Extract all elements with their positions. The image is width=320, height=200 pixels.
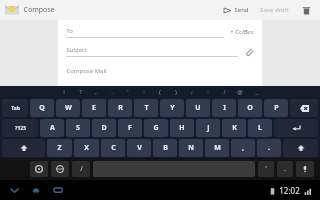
- button[interactable]: Compose Mail: [66, 67, 254, 75]
- button[interactable]: ?123: [2, 119, 38, 137]
- button[interactable]: Y: [160, 99, 184, 117]
- staticText: Y: [170, 103, 175, 113]
- staticText: !: [63, 88, 65, 96]
- staticText: Save draft: [260, 6, 289, 14]
- button[interactable]: .: [257, 139, 281, 157]
- staticText: M: [214, 143, 221, 153]
- button[interactable]: Discard: [299, 4, 314, 17]
- staticText: + Cc/Bcc: [230, 28, 254, 36]
- button[interactable]: Save draft: [257, 3, 292, 17]
- staticText: Tab: [11, 105, 20, 112]
- button[interactable]: B: [153, 139, 177, 157]
- button[interactable]: M: [205, 139, 229, 157]
- button[interactable]: N: [179, 139, 203, 157]
- staticText: E: [92, 103, 96, 113]
- button[interactable]: Enter: [274, 119, 318, 137]
- button[interactable]: Tab: [2, 99, 28, 117]
- staticText: ;: [191, 88, 193, 96]
- button[interactable]: H: [170, 119, 194, 137]
- staticText: O: [247, 103, 253, 113]
- staticText: To: [66, 27, 73, 35]
- staticText: ': [127, 88, 129, 96]
- button[interactable]: _: [248, 86, 264, 98]
- button[interactable]: ,: [88, 86, 104, 98]
- button[interactable]: Recent apps: [50, 182, 66, 198]
- button[interactable]: ,: [231, 139, 255, 157]
- button[interactable]: (: [152, 86, 168, 98]
- staticText: J: [207, 123, 210, 133]
- button[interactable]: Settings: [30, 161, 48, 177]
- button[interactable]: Voice input: [296, 161, 314, 177]
- button[interactable]: I: [212, 99, 236, 117]
- staticText: D: [101, 123, 107, 133]
- button[interactable]: V: [127, 139, 151, 157]
- button[interactable]: P: [264, 99, 288, 117]
- button[interactable]: Back: [6, 182, 22, 198]
- button[interactable]: X: [74, 139, 99, 157]
- staticText: X: [84, 143, 89, 153]
- button[interactable]: K: [222, 119, 246, 137]
- button[interactable]: -: [200, 86, 216, 98]
- button[interactable]: U: [186, 99, 210, 117]
- button[interactable]: @: [232, 86, 248, 98]
- staticText: Compose Mail: [66, 67, 107, 75]
- staticText: _: [255, 88, 258, 96]
- button[interactable]: Status: [268, 185, 314, 196]
- button[interactable]: T: [134, 99, 158, 117]
- staticText: ,: [95, 88, 97, 96]
- button[interactable]: Shift: [283, 139, 318, 157]
- staticText: L: [258, 123, 262, 133]
- staticText: B: [163, 143, 168, 153]
- staticText: G: [153, 123, 159, 133]
- button[interactable]: O: [238, 99, 262, 117]
- button[interactable]: .: [104, 86, 120, 98]
- button[interactable]: /: [216, 86, 232, 98]
- staticText: (: [159, 88, 161, 96]
- staticText: H: [179, 123, 185, 133]
- button[interactable]: R: [108, 99, 132, 117]
- button[interactable]: Subject: [66, 46, 254, 57]
- button[interactable]: Z: [47, 139, 72, 157]
- button[interactable]: W: [56, 99, 80, 117]
- button[interactable]: E: [82, 99, 106, 117]
- button[interactable]: J: [196, 119, 220, 137]
- staticText: T: [144, 103, 149, 113]
- staticText: @: [237, 88, 243, 96]
- staticText: /: [223, 88, 226, 96]
- button[interactable]: ?: [72, 86, 88, 98]
- button[interactable]: + Cc/Bcc: [230, 28, 254, 38]
- button[interactable]: Compose: [3, 1, 57, 19]
- button[interactable]: D: [92, 119, 116, 137]
- button[interactable]: ;: [184, 86, 200, 98]
- staticText: N: [188, 143, 194, 153]
- button[interactable]: Backspace: [290, 99, 318, 117]
- staticText: W: [65, 103, 72, 113]
- button[interactable]: Q: [30, 99, 54, 117]
- staticText: .: [111, 88, 113, 96]
- button[interactable]: A: [40, 119, 64, 137]
- button[interactable]: F: [118, 119, 142, 137]
- button[interactable]: :: [136, 86, 152, 98]
- button[interactable]: L: [248, 119, 272, 137]
- staticText: P: [274, 103, 279, 113]
- staticText: Q: [39, 103, 45, 113]
- button[interactable]: G: [144, 119, 168, 137]
- button[interactable]: Input language: [51, 161, 69, 177]
- button[interactable]: !: [56, 86, 72, 98]
- button[interactable]: ': [258, 161, 274, 177]
- button[interactable]: ': [120, 86, 136, 98]
- button[interactable]: Home: [28, 182, 44, 198]
- button[interactable]: To: [66, 27, 254, 38]
- button[interactable]: Attach file: [244, 47, 254, 57]
- button[interactable]: ): [168, 86, 184, 98]
- staticText: 12:02: [279, 185, 300, 196]
- staticText: R: [118, 103, 123, 113]
- button[interactable]: S: [66, 119, 90, 137]
- button[interactable]: C: [101, 139, 125, 157]
- staticText: Compose: [23, 5, 55, 15]
- button[interactable]: Shift: [2, 139, 45, 157]
- button[interactable]: .: [277, 161, 293, 177]
- button[interactable]: Send: [221, 3, 252, 17]
- button[interactable]: /: [72, 161, 90, 177]
